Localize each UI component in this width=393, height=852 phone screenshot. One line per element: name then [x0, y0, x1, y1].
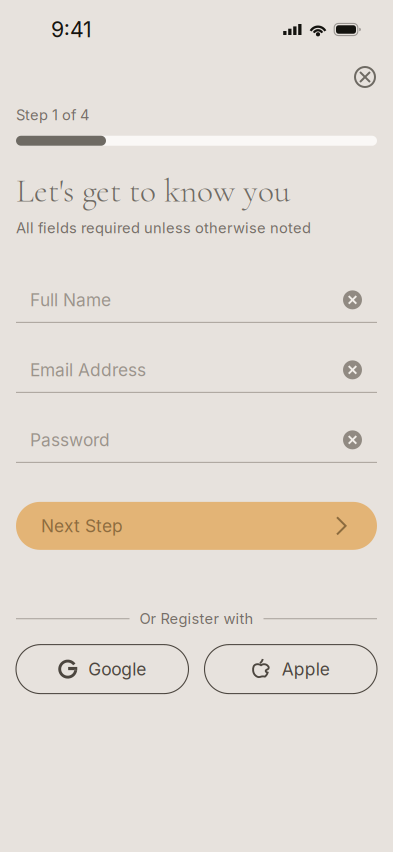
staticText: Next Step	[41, 515, 123, 536]
staticText: Let's get to know you	[16, 171, 290, 211]
staticText: 9:41	[51, 17, 92, 42]
staticText: Or Register with	[139, 610, 253, 628]
button[interactable]: Google	[16, 645, 188, 694]
staticText: All fields required unless otherwise not…	[16, 219, 311, 237]
staticText: Password	[30, 429, 110, 450]
button[interactable]: Clear Password	[338, 425, 367, 454]
staticText: Google	[88, 659, 146, 680]
button[interactable]: Clear Full Name	[338, 285, 367, 314]
button[interactable]: Next Step	[16, 502, 377, 550]
staticText: Apple	[282, 659, 330, 680]
button[interactable]: Clear Email Address	[338, 355, 367, 384]
button[interactable]: Close	[347, 59, 383, 95]
button[interactable]: Apple	[204, 645, 377, 694]
staticText: Email Address	[30, 359, 146, 380]
staticText: Full Name	[30, 289, 111, 310]
staticText: Step 1 of 4	[16, 106, 89, 124]
